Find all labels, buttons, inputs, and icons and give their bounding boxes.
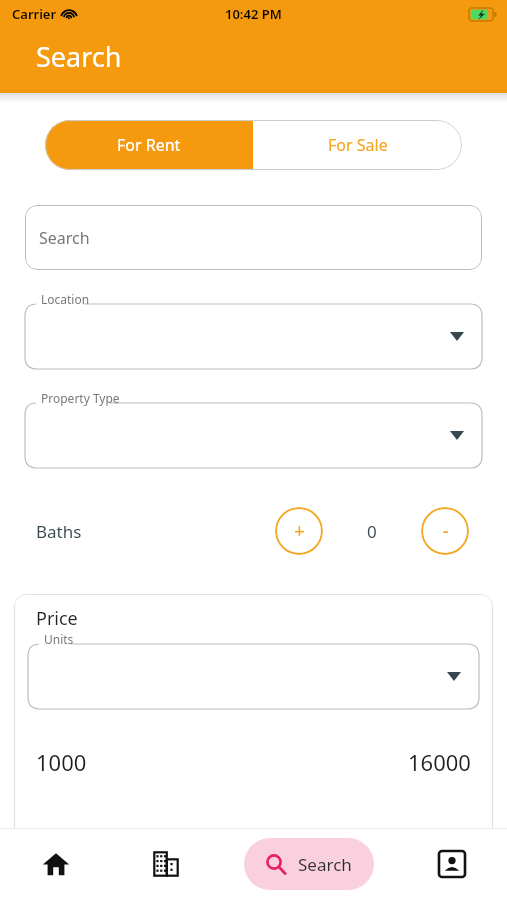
button[interactable]: Home <box>0 828 111 900</box>
staticText: Units <box>44 631 74 647</box>
button[interactable]: Account <box>397 828 507 900</box>
staticText: Price <box>36 606 78 631</box>
staticText: Search <box>298 853 352 876</box>
button[interactable] <box>28 637 479 709</box>
button[interactable]: For Sale <box>253 120 462 170</box>
button[interactable]: Properties <box>111 828 221 900</box>
staticText: + <box>294 518 305 544</box>
staticText: Search <box>36 38 122 75</box>
button[interactable]: For Rent <box>45 120 253 170</box>
staticText: For Rent <box>117 134 181 156</box>
button[interactable]: Search <box>244 838 374 890</box>
staticText: Location <box>41 291 90 307</box>
button[interactable] <box>25 297 482 369</box>
button[interactable]: Search <box>25 205 482 270</box>
staticText: For Sale <box>328 134 388 156</box>
staticText: 1000 <box>36 747 87 777</box>
staticText: Property Type <box>41 390 120 406</box>
staticText: 10:42 PM <box>225 5 282 23</box>
staticText: - <box>442 518 449 544</box>
button[interactable]: Increase baths <box>275 507 323 555</box>
button[interactable]: Decrease baths <box>421 507 469 555</box>
staticText: 0 <box>367 520 377 543</box>
staticText: Search <box>39 227 90 249</box>
staticText: 16000 <box>408 747 471 777</box>
button[interactable] <box>25 396 482 468</box>
staticText: Carrier <box>12 5 57 23</box>
staticText: Baths <box>36 520 82 543</box>
